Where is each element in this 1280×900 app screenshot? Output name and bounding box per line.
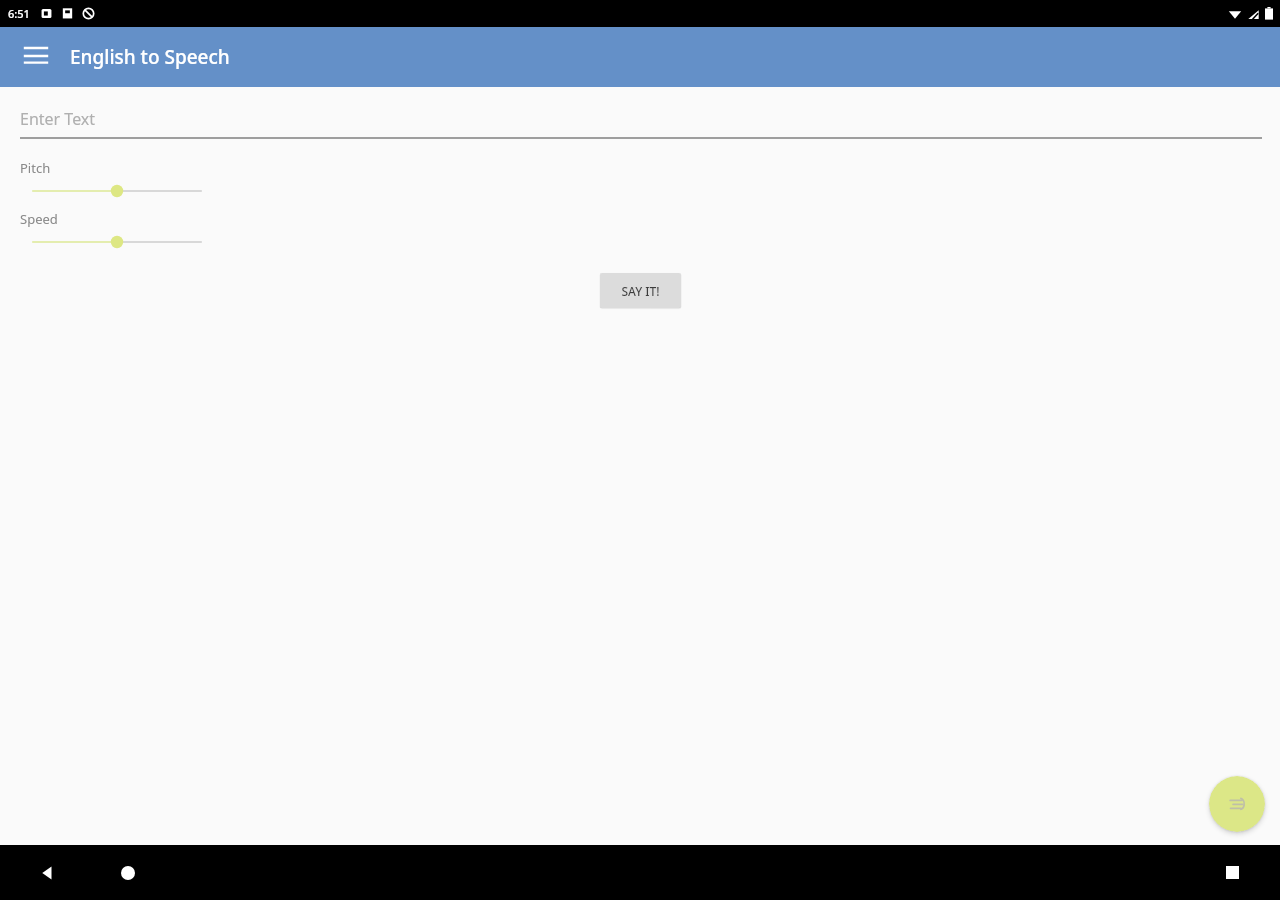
button[interactable]: Enter Text <box>20 108 1262 139</box>
button[interactable]: Pitch slider <box>22 181 212 201</box>
staticText: SAY IT! <box>621 283 660 299</box>
button[interactable]: Home <box>100 845 156 900</box>
staticText: Pitch <box>20 159 51 177</box>
button[interactable]: Open navigation drawer <box>12 33 60 81</box>
staticText: Speed <box>20 210 58 228</box>
staticText: English to Speech <box>70 44 230 70</box>
button[interactable]: Speed slider <box>22 232 212 252</box>
button[interactable]: Speak text <box>1209 776 1265 832</box>
staticText: Enter Text <box>20 108 96 130</box>
button[interactable]: Back <box>20 845 76 900</box>
button[interactable]: SAY IT! <box>600 273 681 308</box>
button[interactable]: Recent apps <box>1204 845 1260 900</box>
staticText: 6:51 <box>8 6 30 21</box>
